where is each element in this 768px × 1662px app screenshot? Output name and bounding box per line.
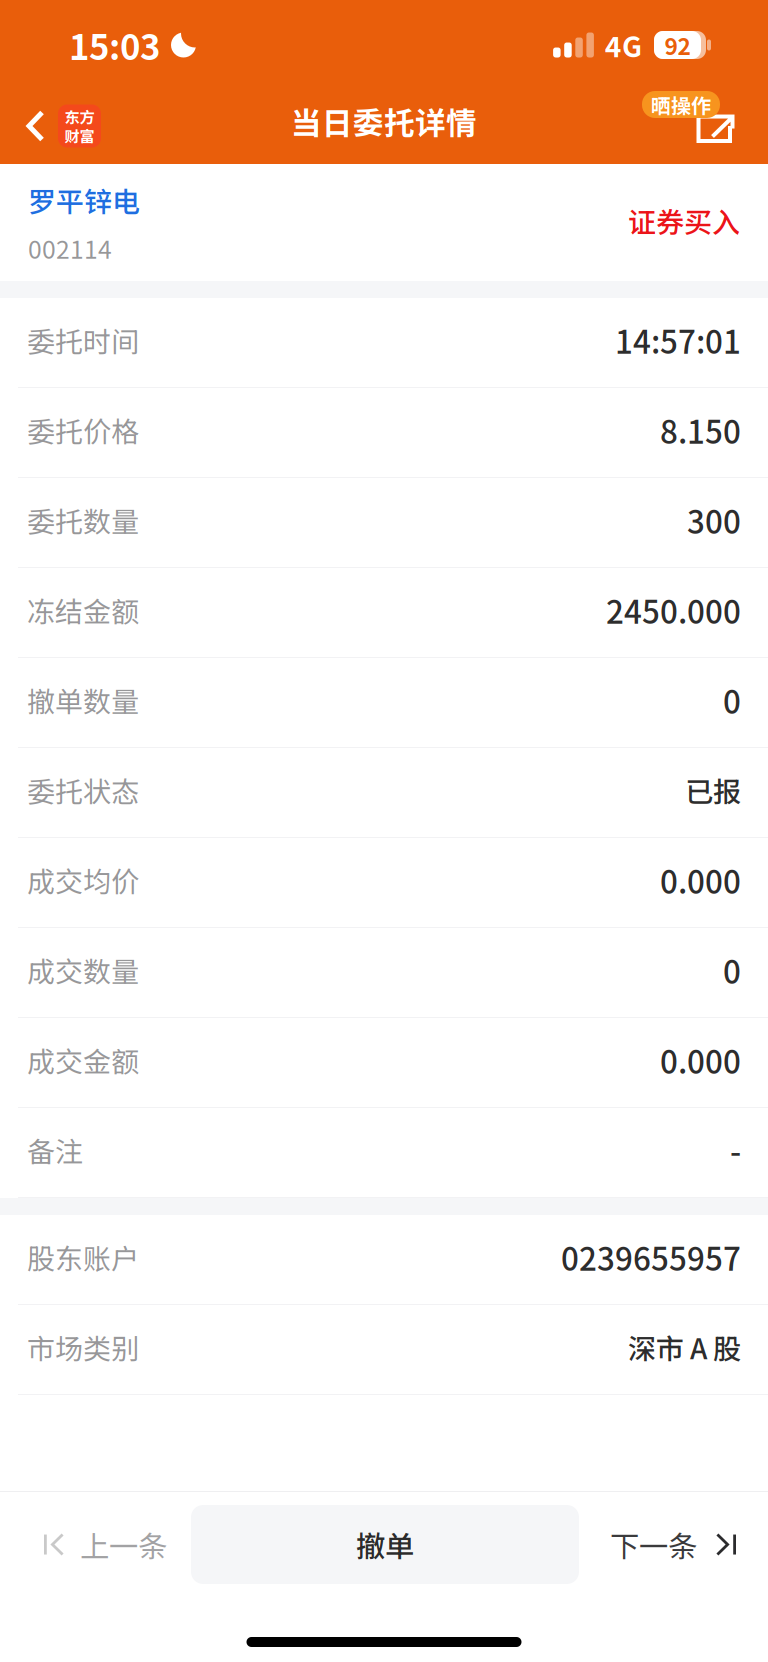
button[interactable]: 撤单 xyxy=(191,1492,579,1597)
staticText: 撤单 xyxy=(356,1523,414,1566)
button[interactable]: Back xyxy=(0,88,115,164)
staticText: 0 xyxy=(723,947,741,993)
staticText: 股东账户 xyxy=(27,1237,139,1277)
staticText: 委托状态 xyxy=(27,770,139,810)
staticText: 成交数量 xyxy=(27,950,139,990)
staticText: 下一条 xyxy=(610,1523,697,1566)
staticText: 0.000 xyxy=(660,857,741,903)
button[interactable]: 上一条 xyxy=(0,1492,191,1597)
staticText: 东方 xyxy=(64,105,94,128)
staticText: 已报 xyxy=(685,770,741,810)
staticText: 委托数量 xyxy=(27,500,139,540)
staticText: 14:57:01 xyxy=(615,317,741,363)
staticText: 0239655957 xyxy=(561,1234,741,1280)
staticText: 300 xyxy=(687,497,741,543)
staticText: 成交金额 xyxy=(27,1040,139,1080)
staticText: 委托时间 xyxy=(27,320,139,360)
staticText: 撤单数量 xyxy=(27,680,139,720)
staticText: 深市 A 股 xyxy=(628,1327,741,1367)
staticText: 8.150 xyxy=(660,407,741,453)
button[interactable]: 下一条 xyxy=(579,1492,768,1597)
staticText: 冻结金额 xyxy=(27,590,139,630)
button[interactable]: Share xyxy=(641,88,768,164)
staticText: 备注 xyxy=(27,1130,83,1170)
staticText: 当日委托详情 xyxy=(291,99,477,143)
staticText: 002114 xyxy=(28,230,112,266)
staticText: 证券买入 xyxy=(628,200,740,241)
staticText: - xyxy=(730,1127,741,1173)
staticText: 0 xyxy=(723,677,741,723)
staticText: 委托价格 xyxy=(27,410,139,450)
staticText: 成交均价 xyxy=(27,860,139,900)
staticText: 2450.000 xyxy=(606,587,741,633)
staticText: 92 xyxy=(664,29,690,61)
staticText: 4G xyxy=(605,25,642,65)
staticText: 罗平锌电 xyxy=(28,180,140,220)
staticText: 财富 xyxy=(64,124,94,147)
staticText: 0.000 xyxy=(660,1037,741,1083)
staticText: 上一条 xyxy=(80,1523,167,1566)
staticText: 15:03 xyxy=(69,20,160,70)
staticText: 市场类别 xyxy=(27,1327,139,1367)
staticText: 晒操作 xyxy=(651,90,711,119)
